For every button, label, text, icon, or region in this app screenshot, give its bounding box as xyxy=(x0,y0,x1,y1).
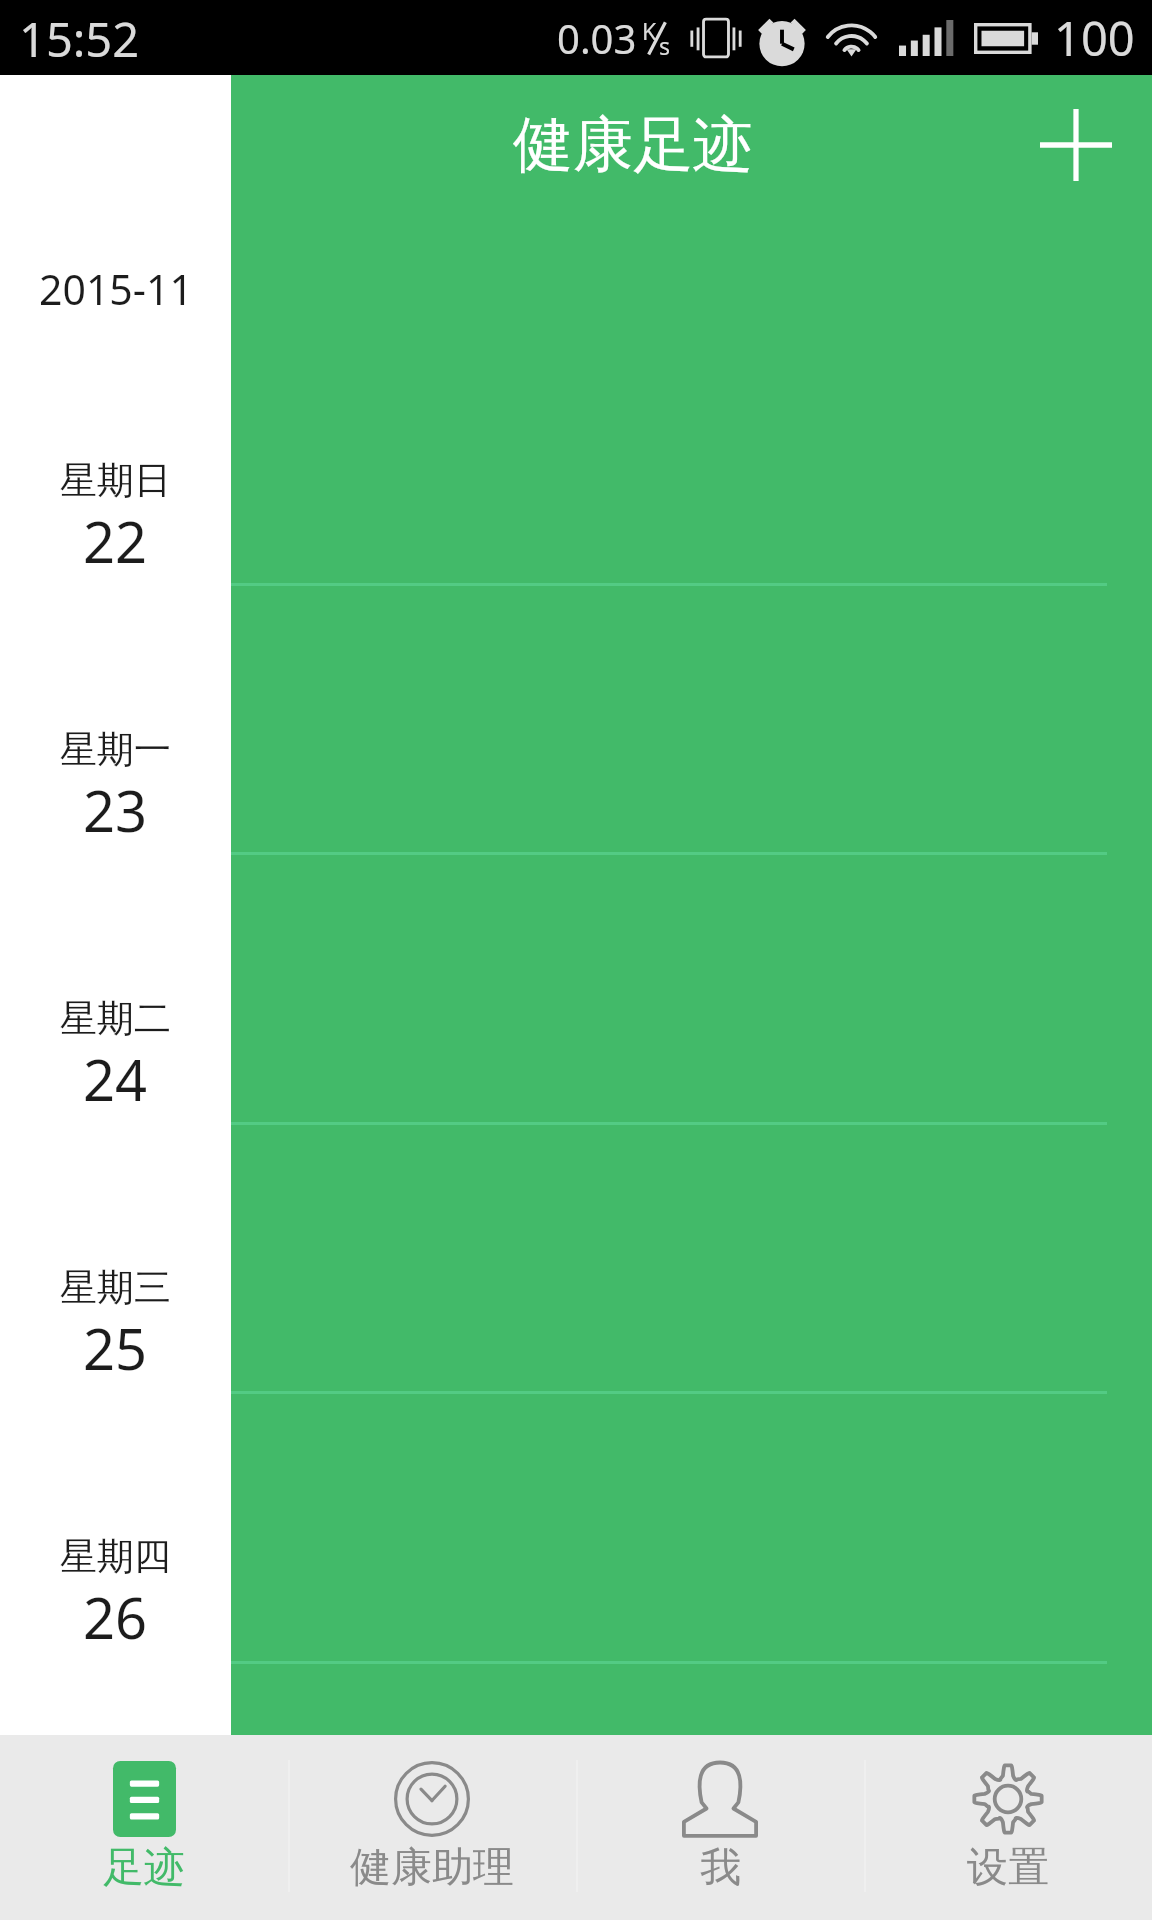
button[interactable]: 我 xyxy=(576,1735,864,1920)
staticText: 星期日 xyxy=(60,457,171,504)
staticText: 星期四 xyxy=(60,1533,171,1580)
staticText: 26 xyxy=(83,1579,148,1655)
button[interactable] xyxy=(231,1661,1152,1735)
staticText: 足迹 xyxy=(103,1842,185,1894)
button[interactable]: 设置 xyxy=(864,1735,1152,1920)
staticText: 100 xyxy=(1054,6,1135,70)
staticText: 星期二 xyxy=(60,995,171,1042)
button[interactable]: 星期三 xyxy=(60,1264,171,1387)
staticText: 我 xyxy=(700,1842,741,1894)
staticText: 星期三 xyxy=(60,1264,171,1311)
staticText: s xyxy=(659,30,671,61)
button[interactable]: 足迹 xyxy=(0,1735,288,1920)
button[interactable]: 健康助理 xyxy=(288,1735,576,1920)
staticText: 设置 xyxy=(967,1842,1049,1894)
staticText: 25 xyxy=(83,1310,148,1386)
staticText: 健康足迹 xyxy=(513,107,753,183)
button[interactable]: 星期一 xyxy=(60,726,171,849)
button[interactable]: 星期二 xyxy=(60,995,171,1118)
staticText: 健康助理 xyxy=(350,1842,514,1894)
staticText: 24 xyxy=(83,1041,148,1117)
staticText: 星期一 xyxy=(60,726,171,773)
button[interactable]: Add xyxy=(1020,89,1132,201)
button[interactable]: 星期日 xyxy=(60,457,171,580)
staticText: 23 xyxy=(83,772,148,848)
staticText: K xyxy=(642,15,657,46)
button[interactable]: 星期四 xyxy=(60,1533,171,1656)
staticText: 2015-11 xyxy=(39,261,193,317)
staticText: 15:52 xyxy=(19,7,140,71)
staticText: 22 xyxy=(83,503,148,579)
staticText: 0.03 xyxy=(557,11,637,65)
